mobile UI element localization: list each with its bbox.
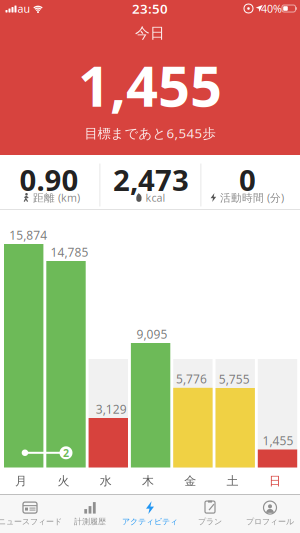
staticText: プロフィール [246,517,294,526]
staticText: 3,129 [96,401,127,417]
staticText: 0.90 [19,160,78,199]
staticText: プラン [198,517,222,526]
button[interactable]: プラン [180,494,240,533]
staticText: 土 [227,474,239,488]
staticText: 1,455 [78,48,222,122]
staticText: 目標まであと6,545歩 [84,124,215,142]
staticText: 9,095 [137,326,168,342]
staticText: kcal [145,190,165,205]
button[interactable]: 計測履歴 [60,494,120,533]
staticText: 40% [261,1,282,16]
staticText: au [17,1,30,16]
button[interactable]: ニュースフィード [0,494,60,533]
staticText: 5,776 [176,371,207,387]
staticText: 0 [239,160,256,199]
staticText: アクティビティ [122,517,178,526]
staticText: 日 [269,474,281,488]
staticText: 活動時間 (分) [220,190,284,205]
button[interactable]: アクティビティ [120,494,180,533]
staticText: ニュースフィード [0,517,62,526]
staticText: 5,755 [219,371,250,387]
staticText: 金 [184,474,196,488]
staticText: 木 [142,474,154,488]
staticText: 15,874 [9,227,47,243]
staticText: 2,473 [113,160,189,199]
staticText: 2 [63,446,69,460]
button[interactable]: プロフィール [240,494,300,533]
staticText: 1,455 [262,432,293,448]
staticText: 計測履歴 [74,517,106,526]
staticText: 月 [15,474,27,488]
staticText: 距離 (km) [33,190,80,205]
staticText: 23:50 [132,0,168,17]
staticText: 14,785 [50,244,88,260]
staticText: 今日 [135,24,165,42]
staticText: 火 [57,474,69,488]
staticText: 水 [100,474,112,488]
